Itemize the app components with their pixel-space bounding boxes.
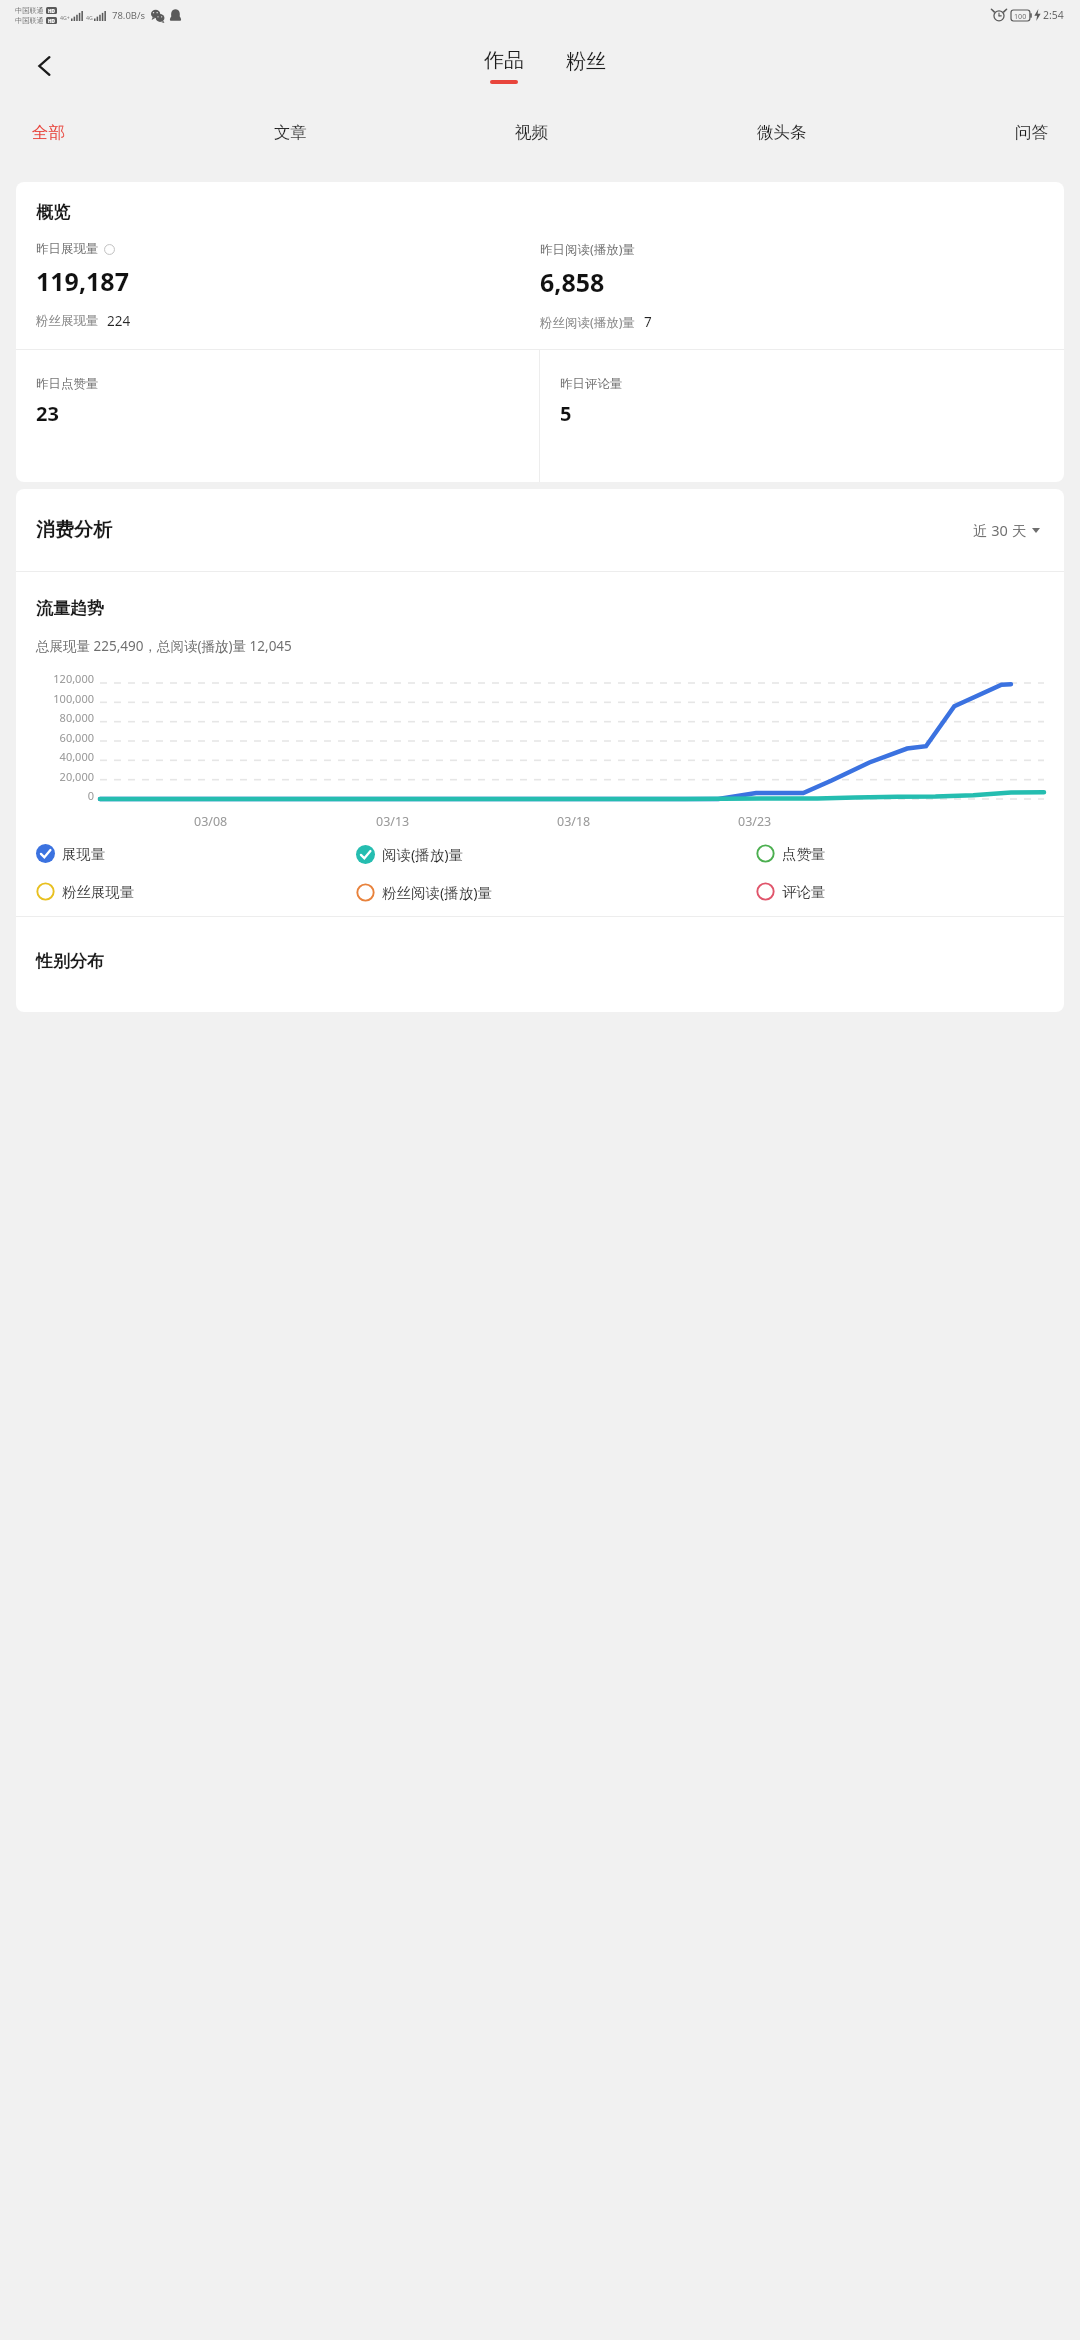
button[interactable]: 作品 bbox=[474, 44, 534, 88]
button[interactable]: 全部 bbox=[20, 116, 77, 149]
staticText: 近 30 天 bbox=[973, 520, 1027, 540]
staticText: HD bbox=[48, 8, 55, 14]
other: Alarm bbox=[992, 8, 1006, 22]
staticText: 全部 bbox=[32, 122, 65, 143]
staticText: 粉丝展现量 bbox=[36, 313, 99, 329]
staticText: 总展现量 225,490，总阅读(播放)量 12,045 bbox=[36, 637, 292, 655]
staticText: 昨日展现量 bbox=[36, 241, 99, 257]
staticText: 概览 bbox=[36, 202, 70, 223]
staticText: 粉丝展现量 bbox=[62, 883, 135, 901]
button[interactable]: 问答 bbox=[1003, 116, 1060, 149]
staticText: 中国联通 bbox=[15, 6, 44, 15]
button[interactable]: 粉丝阅读(播放)量 bbox=[356, 882, 756, 902]
button[interactable]: 阅读(播放)量 bbox=[356, 844, 756, 864]
button[interactable]: Back bbox=[18, 39, 72, 93]
staticText: 03/13 bbox=[376, 813, 410, 830]
staticText: 流量趋势 bbox=[36, 598, 104, 619]
staticText: 4G bbox=[86, 14, 93, 21]
staticText: 评论量 bbox=[782, 883, 826, 901]
staticText: 120,000 bbox=[53, 671, 94, 686]
staticText: 展现量 bbox=[62, 845, 106, 863]
staticText: 4G+ bbox=[60, 14, 70, 21]
staticText: 阅读(播放)量 bbox=[382, 844, 464, 864]
staticText: 性别分布 bbox=[36, 951, 104, 972]
staticText: 7 bbox=[644, 313, 652, 331]
staticText: 问答 bbox=[1015, 122, 1048, 143]
staticText: 中国联通 bbox=[15, 16, 44, 25]
staticText: 文章 bbox=[274, 122, 307, 143]
button[interactable]: 近 30 天 bbox=[967, 514, 1046, 546]
staticText: 60,000 bbox=[59, 730, 94, 745]
staticText: 119,187 bbox=[36, 264, 129, 298]
staticText: 昨日点赞量 bbox=[36, 376, 99, 392]
staticText: 5 bbox=[560, 400, 572, 427]
staticText: 6,858 bbox=[540, 265, 605, 299]
staticText: 23 bbox=[36, 400, 59, 427]
staticText: HD bbox=[48, 18, 55, 24]
staticText: 224 bbox=[107, 312, 131, 330]
staticText: 粉丝阅读(播放)量 bbox=[540, 314, 636, 331]
button[interactable]: 粉丝 bbox=[556, 50, 616, 83]
staticText: 作品 bbox=[484, 48, 524, 73]
button[interactable]: 粉丝展现量 bbox=[36, 882, 356, 901]
staticText: 粉丝 bbox=[566, 49, 606, 74]
staticText: 20,000 bbox=[59, 769, 94, 784]
staticText: 03/23 bbox=[738, 813, 772, 830]
staticText: 粉丝阅读(播放)量 bbox=[382, 882, 493, 902]
staticText: 视频 bbox=[515, 122, 548, 143]
staticText: 78.0B/s bbox=[112, 9, 146, 22]
staticText: 点赞量 bbox=[782, 845, 826, 863]
staticText: 2:54 bbox=[1043, 8, 1064, 22]
staticText: 消费分析 bbox=[36, 518, 112, 542]
staticText: 100,000 bbox=[53, 691, 94, 706]
staticText: 昨日阅读(播放)量 bbox=[540, 241, 636, 258]
button[interactable]: 展现量 bbox=[36, 844, 356, 863]
button[interactable]: 文章 bbox=[262, 116, 319, 149]
button[interactable]: 点赞量 bbox=[756, 844, 1044, 863]
staticText: 03/08 bbox=[194, 813, 228, 830]
staticText: 40,000 bbox=[59, 749, 94, 764]
button[interactable]: 视频 bbox=[503, 116, 560, 149]
staticText: 100 bbox=[1014, 11, 1027, 21]
button[interactable]: 评论量 bbox=[756, 882, 1044, 901]
staticText: 微头条 bbox=[757, 122, 807, 143]
staticText: 0 bbox=[87, 788, 94, 803]
staticText: 03/18 bbox=[557, 813, 591, 830]
button[interactable]: 微头条 bbox=[745, 116, 819, 149]
staticText: 昨日评论量 bbox=[560, 376, 623, 392]
staticText: 80,000 bbox=[59, 710, 94, 725]
